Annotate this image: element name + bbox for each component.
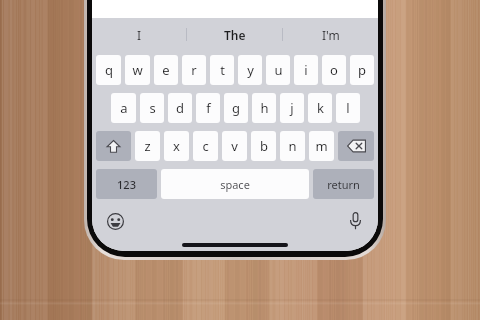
- staticText: g: [232, 99, 240, 117]
- button[interactable]: c: [193, 131, 218, 161]
- staticText: o: [330, 61, 338, 79]
- button[interactable]: x: [164, 131, 189, 161]
- staticText: y: [247, 61, 254, 79]
- button[interactable]: h: [252, 93, 276, 123]
- button[interactable]: Backspace: [338, 131, 374, 161]
- button[interactable]: p: [350, 55, 374, 85]
- button[interactable]: z: [135, 131, 160, 161]
- staticText: t: [220, 61, 225, 79]
- button[interactable]: Dictation: [342, 208, 368, 234]
- staticText: p: [358, 61, 366, 79]
- button[interactable]: Shift: [96, 131, 131, 161]
- staticText: f: [206, 99, 211, 117]
- button[interactable]: o: [322, 55, 346, 85]
- button[interactable]: g: [224, 93, 248, 123]
- staticText: s: [149, 99, 156, 117]
- button[interactable]: k: [308, 93, 332, 123]
- staticText: 123: [117, 177, 136, 192]
- staticText: a: [120, 99, 128, 117]
- staticText: q: [105, 61, 113, 79]
- staticText: r: [191, 61, 197, 79]
- button[interactable]: u: [266, 55, 290, 85]
- button[interactable]: s: [140, 93, 164, 123]
- staticText: z: [144, 137, 151, 155]
- button[interactable]: a: [111, 93, 136, 123]
- staticText: space: [220, 177, 250, 192]
- button[interactable]: f: [196, 93, 220, 123]
- button[interactable]: I: [92, 18, 186, 51]
- staticText: m: [315, 137, 328, 155]
- staticText: l: [346, 99, 350, 117]
- staticText: return: [327, 177, 360, 192]
- staticText: b: [260, 137, 268, 155]
- button[interactable]: n: [280, 131, 305, 161]
- button[interactable]: t: [210, 55, 234, 85]
- staticText: k: [317, 99, 324, 117]
- button[interactable]: m: [309, 131, 334, 161]
- button[interactable]: r: [182, 55, 206, 85]
- staticText: c: [202, 137, 209, 155]
- staticText: n: [288, 137, 297, 155]
- button[interactable]: I'm: [283, 18, 378, 51]
- staticText: v: [231, 137, 238, 155]
- button[interactable]: w: [125, 55, 150, 85]
- button[interactable]: return: [313, 169, 374, 199]
- staticText: u: [274, 61, 283, 79]
- button[interactable]: d: [168, 93, 192, 123]
- button[interactable]: y: [238, 55, 262, 85]
- staticText: The: [224, 27, 246, 43]
- staticText: x: [173, 137, 180, 155]
- button[interactable]: b: [251, 131, 276, 161]
- button[interactable]: v: [222, 131, 247, 161]
- staticText: w: [132, 61, 143, 79]
- staticText: i: [304, 61, 308, 79]
- staticText: d: [176, 99, 184, 117]
- staticText: I: [137, 27, 142, 43]
- staticText: e: [162, 61, 170, 79]
- button[interactable]: l: [336, 93, 360, 123]
- staticText: j: [290, 99, 294, 117]
- button[interactable]: j: [280, 93, 304, 123]
- staticText: I'm: [322, 27, 340, 43]
- button[interactable]: e: [154, 55, 178, 85]
- button[interactable]: The: [187, 18, 282, 51]
- button[interactable]: Emoji keyboard: [102, 208, 128, 234]
- button[interactable]: 123: [96, 169, 157, 199]
- staticText: h: [260, 99, 269, 117]
- button[interactable]: space: [161, 169, 309, 199]
- button[interactable]: i: [294, 55, 318, 85]
- button[interactable]: q: [96, 55, 121, 85]
